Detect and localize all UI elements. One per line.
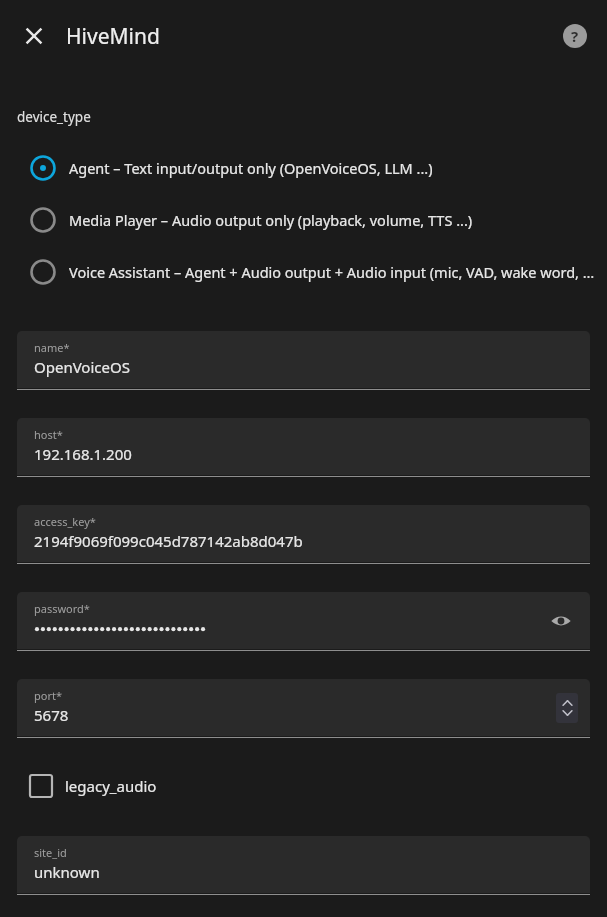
staticText: unknown bbox=[34, 862, 100, 882]
staticText: legacy_audio bbox=[65, 776, 157, 796]
button[interactable]: Agent – Text input/output only (OpenVoic… bbox=[0, 142, 607, 194]
staticText: HiveMind bbox=[66, 22, 160, 51]
staticText: site_id bbox=[34, 845, 67, 860]
button[interactable]: legacy_audio bbox=[0, 762, 607, 810]
button[interactable]: access_key* bbox=[17, 505, 590, 564]
staticText: access_key* bbox=[34, 514, 96, 529]
button[interactable]: Voice Assistant – Agent + Audio output +… bbox=[0, 246, 607, 298]
button[interactable]: site_id bbox=[17, 836, 590, 895]
staticText: Agent – Text input/output only (OpenVoic… bbox=[69, 158, 433, 178]
staticText: Voice Assistant – Agent + Audio output +… bbox=[69, 262, 595, 282]
staticText: Media Player – Audio output only (playba… bbox=[69, 210, 473, 230]
staticText: 2194f9069f099c045d787142ab8d047b bbox=[34, 531, 303, 551]
staticText: name* bbox=[34, 340, 70, 355]
staticText: password* bbox=[34, 601, 90, 616]
staticText: port* bbox=[34, 688, 62, 703]
button[interactable]: port* bbox=[17, 679, 590, 738]
staticText: OpenVoiceOS bbox=[34, 357, 130, 377]
staticText: device_type bbox=[17, 108, 91, 126]
button[interactable]: host* bbox=[17, 418, 590, 477]
staticText: host* bbox=[34, 427, 63, 442]
staticText: 192.168.1.200 bbox=[34, 444, 132, 464]
button[interactable]: name* bbox=[17, 331, 590, 390]
staticText: ? bbox=[571, 26, 579, 46]
button[interactable]: Increment or decrement bbox=[556, 693, 578, 723]
button[interactable]: Media Player – Audio output only (playba… bbox=[0, 194, 607, 246]
button[interactable]: Close bbox=[13, 15, 55, 57]
button[interactable]: password* bbox=[17, 592, 590, 651]
staticText: 5678 bbox=[34, 705, 69, 725]
button[interactable]: Show password bbox=[544, 604, 578, 638]
button[interactable]: Help bbox=[555, 16, 595, 56]
